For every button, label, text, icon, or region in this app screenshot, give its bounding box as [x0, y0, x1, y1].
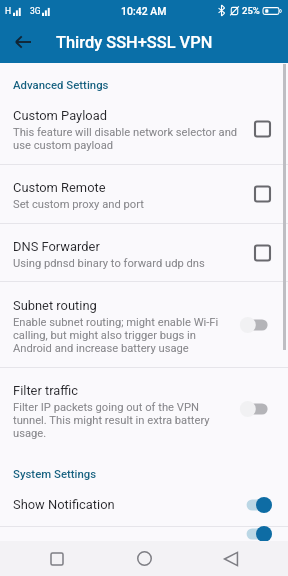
- button[interactable]: Custom Remote: [0, 165, 288, 223]
- staticText: Using pdnsd binary to forward udp dns: [13, 257, 205, 270]
- button[interactable]: Start on boot: [0, 527, 288, 541]
- staticText: Set custom proxy and port: [13, 198, 144, 211]
- staticText: Thirdy SSH+SSL VPN: [56, 33, 213, 52]
- staticText: 3G: [30, 6, 41, 16]
- button[interactable]: DNS Forwarder: [0, 224, 288, 281]
- staticText: 10:42 AM: [121, 5, 167, 17]
- staticText: Filter IP packets going out of the VPN t…: [13, 401, 228, 440]
- staticText: Subnet routing: [13, 298, 97, 313]
- staticText: Advanced Settings: [13, 78, 109, 91]
- staticText: Filter traffic: [13, 383, 79, 398]
- staticText: 25%: [242, 5, 260, 16]
- button[interactable]: Back: [9, 28, 37, 56]
- button[interactable]: Back: [201, 541, 261, 576]
- button[interactable]: Custom Payload: [0, 94, 288, 164]
- staticText: Show Notification: [13, 497, 115, 512]
- button[interactable]: Subnet routing: [0, 282, 288, 367]
- staticText: H: [5, 6, 12, 16]
- staticText: DNS Forwarder: [13, 239, 100, 254]
- button[interactable]: Filter traffic: [0, 368, 288, 449]
- staticText: Custom Payload: [13, 108, 107, 123]
- button[interactable]: Show Notification: [0, 483, 288, 526]
- staticText: Custom Remote: [13, 180, 106, 195]
- staticText: This feature will disable network select…: [13, 126, 239, 152]
- staticText: Enable subnet routing; might enable Wi-F…: [13, 316, 228, 355]
- button[interactable]: Recents: [27, 541, 87, 576]
- staticText: System Settings: [13, 467, 97, 480]
- button[interactable]: Home: [114, 541, 174, 576]
